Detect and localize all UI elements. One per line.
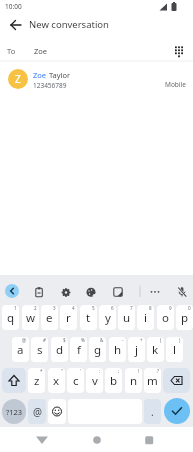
button[interactable]: f	[70, 337, 87, 362]
staticText: 6	[111, 305, 114, 311]
staticText: 4	[72, 305, 75, 311]
button[interactable]: ?123	[2, 399, 26, 424]
staticText: "	[61, 368, 63, 374]
button[interactable]	[88, 431, 106, 449]
button[interactable]: a	[12, 337, 29, 362]
staticText: .	[151, 405, 154, 419]
staticText: 5	[92, 305, 95, 311]
button[interactable]: v	[86, 368, 103, 393]
button[interactable]: w	[22, 305, 39, 330]
button[interactable]: i	[137, 305, 154, 330]
button[interactable]	[85, 286, 97, 298]
staticText: 7	[130, 305, 133, 311]
button[interactable]: q	[2, 305, 19, 330]
staticText: h	[114, 342, 122, 358]
staticText: %	[81, 337, 85, 343]
button[interactable]	[60, 286, 72, 298]
button[interactable]: m	[144, 368, 161, 393]
staticText: 123456789	[33, 81, 67, 90]
staticText: New conversation	[29, 18, 109, 31]
staticText: v	[92, 373, 98, 389]
button[interactable]	[5, 284, 19, 298]
button[interactable]: .	[144, 399, 161, 424]
staticText: u	[123, 310, 131, 326]
button[interactable]	[164, 398, 190, 424]
button[interactable]: x	[48, 368, 65, 393]
staticText: 2	[34, 305, 37, 311]
staticText: 3	[53, 305, 56, 311]
staticText: w	[26, 310, 36, 326]
staticText: &	[100, 337, 104, 343]
button[interactable]: h	[109, 337, 126, 362]
button[interactable]	[146, 286, 164, 304]
button[interactable]: z	[28, 368, 45, 393]
staticText: 10:00	[5, 2, 22, 11]
staticText: Mobile	[165, 80, 186, 89]
button[interactable]: l	[166, 337, 183, 362]
staticText: Z	[15, 72, 21, 86]
button[interactable]: g	[89, 337, 106, 362]
staticText: @	[22, 337, 27, 343]
button[interactable]	[33, 431, 51, 449]
button[interactable]: k	[147, 337, 164, 362]
staticText: z	[34, 373, 40, 389]
staticText: d	[56, 342, 64, 358]
button[interactable]	[163, 368, 190, 393]
staticText: $	[63, 337, 66, 343]
staticText: 1	[14, 305, 17, 311]
staticText: ;	[118, 368, 120, 374]
button[interactable]	[0, 64, 193, 96]
staticText: #	[43, 337, 46, 343]
staticText: a	[17, 342, 24, 358]
button[interactable]: r	[60, 305, 77, 330]
button[interactable]: s	[31, 337, 48, 362]
button[interactable]: n	[125, 368, 142, 393]
button[interactable]: t	[80, 305, 97, 330]
button[interactable]: e	[41, 305, 58, 330]
staticText: !	[138, 368, 140, 374]
button[interactable]	[176, 286, 188, 298]
staticText: n	[130, 373, 138, 389]
staticText: @	[33, 405, 42, 419]
button[interactable]	[33, 286, 45, 298]
staticText: i	[144, 310, 147, 326]
staticText: To	[7, 46, 16, 56]
staticText: j	[135, 342, 138, 358]
button[interactable]	[140, 431, 158, 449]
button[interactable]: j	[128, 337, 145, 362]
button[interactable]: d	[51, 337, 68, 362]
button[interactable]: p	[176, 305, 193, 330]
staticText: :	[99, 368, 101, 374]
staticText: x	[53, 373, 60, 389]
staticText: q	[7, 310, 15, 326]
staticText: e	[46, 310, 53, 326]
button[interactable]	[0, 36, 193, 61]
staticText: p	[181, 310, 189, 326]
staticText: o	[162, 310, 169, 326]
staticText: b	[110, 373, 118, 389]
button[interactable]: b	[105, 368, 122, 393]
staticText: Zoe	[33, 70, 49, 80]
button[interactable]	[172, 44, 186, 58]
button[interactable]: y	[99, 305, 116, 330]
button[interactable]: u	[118, 305, 135, 330]
button[interactable]	[8, 17, 24, 33]
staticText: k	[152, 342, 159, 358]
staticText: c	[73, 373, 79, 389]
button[interactable]: @	[28, 399, 46, 424]
staticText: Zoe	[34, 46, 48, 56]
staticText: Taylor	[49, 70, 71, 80]
staticText: 0	[188, 305, 191, 311]
button[interactable]	[2, 368, 26, 393]
staticText: f	[77, 342, 81, 358]
staticText: l	[173, 342, 176, 358]
staticText: ?123	[6, 407, 23, 417]
staticText: t	[86, 310, 91, 326]
staticText: 8	[149, 305, 152, 311]
button[interactable]	[112, 286, 124, 298]
button[interactable]: o	[157, 305, 174, 330]
staticText: (	[160, 337, 162, 343]
button[interactable]	[48, 399, 66, 424]
button[interactable]: c	[67, 368, 84, 393]
